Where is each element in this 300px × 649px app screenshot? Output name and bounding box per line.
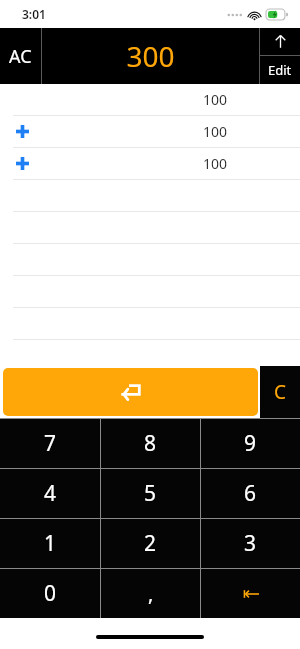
button[interactable]: 7	[0, 419, 100, 468]
staticText: ,	[148, 580, 154, 607]
staticText: 8	[144, 429, 157, 458]
staticText: 9	[244, 429, 257, 458]
button[interactable]: Scroll up	[260, 28, 300, 55]
staticText: Edit	[268, 61, 292, 79]
staticText: 6	[244, 479, 257, 508]
button[interactable]: 100	[0, 148, 300, 180]
button[interactable]: ,	[101, 569, 200, 618]
staticText: 100	[203, 90, 228, 109]
button[interactable]: Backspace	[201, 569, 300, 618]
button[interactable]: 300	[42, 28, 259, 84]
staticText: 0	[44, 579, 57, 608]
staticText: 2	[144, 529, 157, 558]
staticText: 1	[44, 529, 57, 558]
button[interactable]: 0	[0, 569, 100, 618]
button[interactable]: 8	[101, 419, 200, 468]
button[interactable]: Enter	[3, 368, 258, 416]
button[interactable]: 9	[201, 419, 300, 468]
staticText: 100	[203, 122, 228, 141]
button[interactable]: AC	[0, 28, 41, 84]
button[interactable]: 6	[201, 469, 300, 518]
button[interactable]	[0, 212, 300, 244]
button[interactable]: 4	[0, 469, 100, 518]
staticText: 5	[144, 479, 157, 508]
staticText: 100	[203, 154, 228, 173]
button[interactable]: 100	[0, 116, 300, 148]
button[interactable]: 100	[0, 84, 300, 116]
staticText: 300	[126, 37, 175, 75]
button[interactable]: 1	[0, 519, 100, 568]
button[interactable]	[0, 244, 300, 276]
button[interactable]: Edit	[260, 56, 300, 84]
button[interactable]	[0, 308, 300, 340]
staticText: 3:01	[22, 6, 46, 22]
staticText: 3	[244, 529, 257, 558]
button[interactable]: 2	[101, 519, 200, 568]
button[interactable]	[0, 276, 300, 308]
button[interactable]	[0, 180, 300, 212]
staticText: AC	[9, 44, 32, 69]
button[interactable]: 3	[201, 519, 300, 568]
button[interactable]: C	[260, 366, 300, 418]
staticText: 7	[44, 429, 57, 458]
staticText: 4	[44, 479, 57, 508]
staticText: C	[274, 379, 287, 405]
button[interactable]: 5	[101, 469, 200, 518]
